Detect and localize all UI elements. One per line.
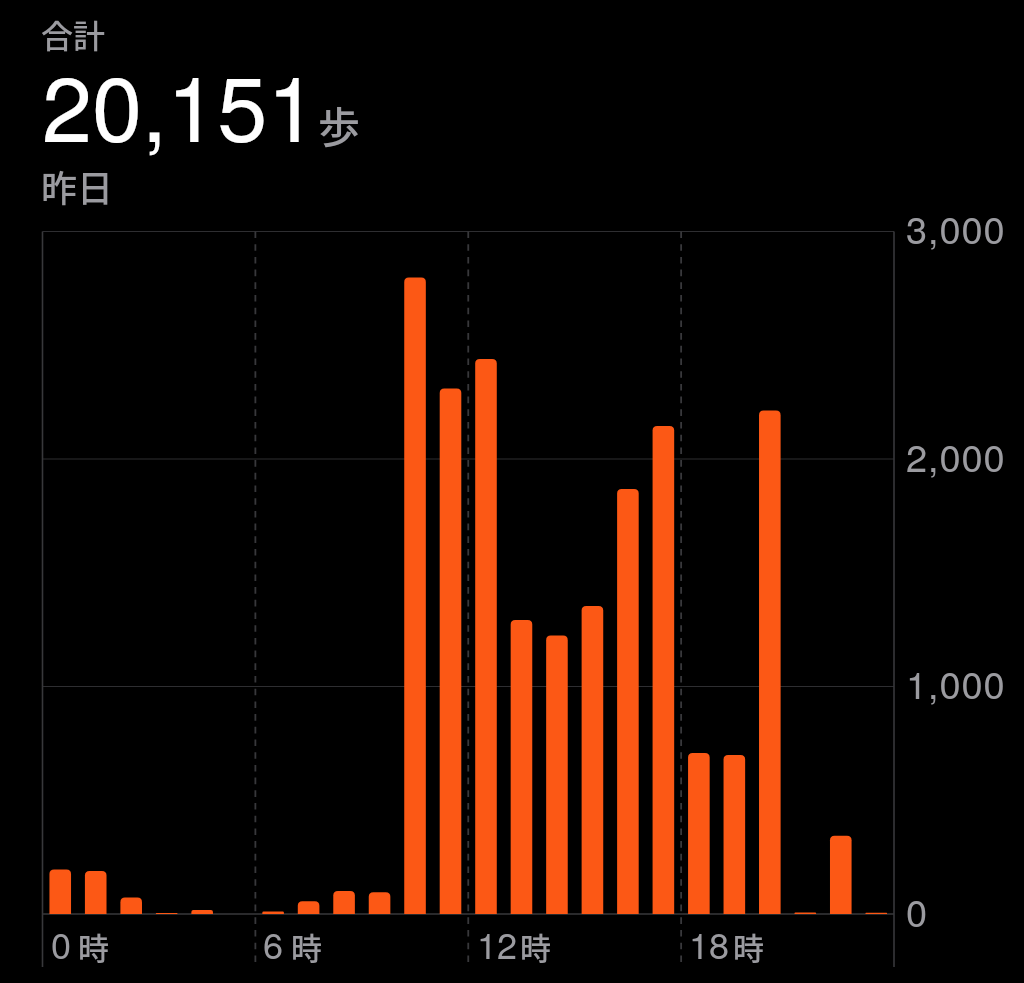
- button[interactable]: 合計: [36, 8, 376, 208]
- staticText: 0: [906, 883, 929, 937]
- staticText: 時: [291, 924, 322, 969]
- staticText: 6: [263, 918, 284, 970]
- staticText: 合計: [41, 11, 106, 57]
- staticText: 2,000: [906, 428, 1006, 482]
- button[interactable]: Hourly step count chart: [0, 0, 1024, 983]
- staticText: 歩: [318, 94, 361, 155]
- staticText: 0: [51, 918, 72, 970]
- staticText: 1,000: [906, 655, 1006, 709]
- staticText: 昨日: [41, 160, 114, 212]
- staticText: 12: [477, 918, 518, 970]
- staticText: 20,151: [42, 39, 318, 168]
- staticText: 18: [689, 918, 730, 970]
- staticText: 時: [520, 924, 551, 969]
- staticText: 3,000: [906, 200, 1006, 254]
- staticText: 時: [78, 924, 109, 969]
- staticText: 時: [733, 924, 764, 969]
